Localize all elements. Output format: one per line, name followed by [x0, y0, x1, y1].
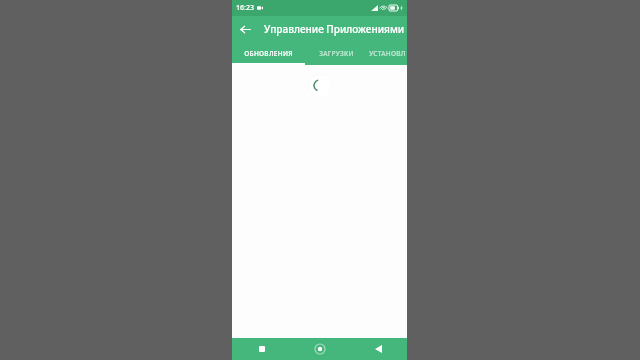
button[interactable]: Home: [291, 338, 349, 360]
staticText: ЗАГРУЗКИ: [319, 49, 354, 58]
staticText: УСТАНОВЛ: [369, 49, 406, 58]
button[interactable]: Recents: [232, 338, 291, 360]
button[interactable]: Back: [349, 338, 407, 360]
button[interactable]: ОБНОВЛЕНИЯ: [232, 41, 305, 65]
button[interactable]: Back: [236, 20, 254, 38]
staticText: Управление Приложениями: [264, 22, 405, 36]
button[interactable]: ЗАГРУЗКИ: [305, 41, 367, 65]
staticText: 16:23: [236, 3, 254, 13]
button[interactable]: УСТАНОВЛ: [367, 41, 407, 65]
staticText: ОБНОВЛЕНИЯ: [244, 49, 293, 58]
